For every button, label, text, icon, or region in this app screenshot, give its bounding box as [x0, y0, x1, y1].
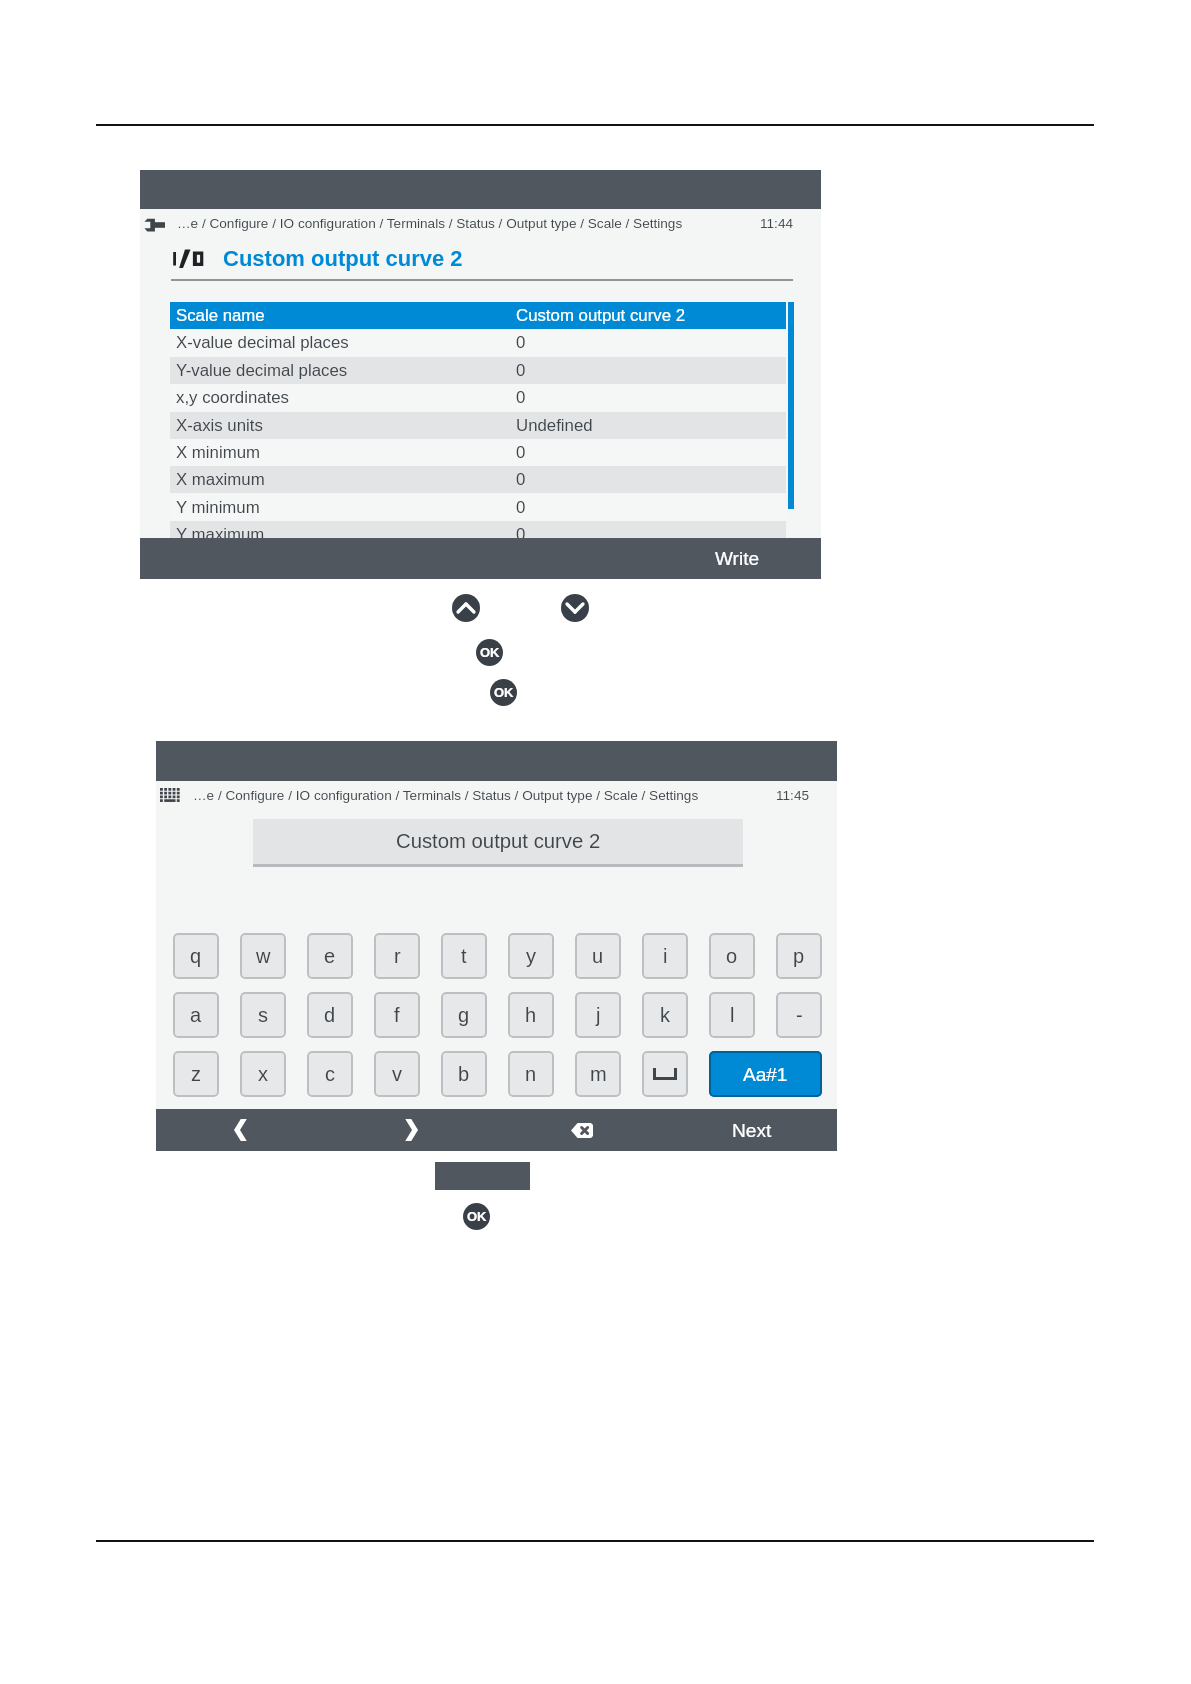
staticText: Custom output curve 2	[516, 306, 685, 325]
button[interactable]: k	[642, 992, 688, 1038]
button[interactable]: Y-value decimal places	[170, 357, 786, 384]
staticText: s	[258, 1004, 268, 1026]
button[interactable]: g	[441, 992, 487, 1038]
button[interactable]: t	[441, 933, 487, 979]
staticText: d	[324, 1004, 336, 1026]
button[interactable]: -	[776, 992, 822, 1038]
staticText: -	[796, 1004, 803, 1026]
button[interactable]: Next	[697, 1109, 807, 1151]
staticText: Next	[732, 1120, 772, 1141]
button[interactable]: f	[374, 992, 420, 1038]
staticText: Write	[715, 548, 759, 569]
staticText: 0	[516, 498, 526, 517]
staticText: OK	[467, 1209, 487, 1224]
staticText: Undefined	[516, 416, 593, 435]
button[interactable]: c	[307, 1051, 353, 1097]
staticText: x,y coordinates	[176, 388, 289, 407]
staticText: t	[461, 945, 467, 967]
button[interactable]: w	[240, 933, 286, 979]
button[interactable]: a	[173, 992, 219, 1038]
staticText: n	[525, 1063, 537, 1085]
staticText: q	[190, 945, 202, 967]
staticText: 0	[516, 525, 526, 538]
button[interactable]: r	[374, 933, 420, 979]
button[interactable]: m	[575, 1051, 621, 1097]
button[interactable]: v	[374, 1051, 420, 1097]
staticText: h	[525, 1004, 537, 1026]
staticText: OK	[480, 645, 500, 660]
button[interactable]: s	[240, 992, 286, 1038]
button[interactable]: Aa#1	[709, 1051, 822, 1097]
button[interactable]: Backspace	[527, 1109, 637, 1151]
staticText: 11:45	[776, 788, 810, 803]
staticText: X minimum	[176, 443, 260, 462]
staticText: w	[256, 945, 271, 967]
button[interactable]: l	[709, 992, 755, 1038]
button[interactable]: X minimum	[170, 439, 786, 466]
staticText: a	[190, 1004, 202, 1026]
staticText: k	[660, 1004, 670, 1026]
button[interactable]: Custom output curve 2	[253, 819, 743, 864]
staticText: c	[325, 1063, 335, 1085]
button[interactable]: n	[508, 1051, 554, 1097]
button[interactable]: Y minimum	[170, 494, 786, 521]
button[interactable]: i	[642, 933, 688, 979]
staticText: Y maximum	[176, 525, 265, 538]
staticText: X-axis units	[176, 416, 263, 435]
button[interactable]: p	[776, 933, 822, 979]
button[interactable]: Write	[715, 538, 821, 579]
staticText: p	[793, 945, 805, 967]
staticText: m	[590, 1063, 607, 1085]
button[interactable]: Move left	[186, 1109, 296, 1151]
staticText: 0	[516, 361, 526, 380]
button[interactable]: Move right	[355, 1109, 465, 1151]
staticText: r	[394, 945, 401, 967]
staticText: Scale name	[176, 306, 265, 325]
button[interactable]: d	[307, 992, 353, 1038]
button[interactable]: z	[173, 1051, 219, 1097]
button[interactable]: OK	[476, 639, 503, 666]
staticText: o	[726, 945, 738, 967]
button[interactable]: X maximum	[170, 466, 786, 493]
button[interactable]: y	[508, 933, 554, 979]
button[interactable]: OK	[490, 679, 517, 706]
staticText: Y-value decimal places	[176, 361, 348, 380]
staticText: Y minimum	[176, 498, 260, 517]
staticText: Custom output curve 2	[223, 246, 463, 271]
staticText: u	[592, 945, 604, 967]
button[interactable]: Y maximum	[170, 521, 786, 538]
button[interactable]: o	[709, 933, 755, 979]
button[interactable]: x	[240, 1051, 286, 1097]
button[interactable]: Scale name	[170, 302, 786, 329]
staticText: g	[458, 1004, 470, 1026]
staticText: 0	[516, 470, 526, 489]
staticText: j	[596, 1004, 601, 1026]
button[interactable]: e	[307, 933, 353, 979]
staticText: 0	[516, 333, 526, 352]
button[interactable]: q	[173, 933, 219, 979]
staticText: b	[458, 1063, 470, 1085]
button[interactable]: h	[508, 992, 554, 1038]
staticText: y	[526, 945, 536, 967]
button[interactable]: b	[441, 1051, 487, 1097]
staticText: v	[392, 1063, 402, 1085]
button[interactable]	[642, 1051, 688, 1097]
staticText: …e / Configure / IO configuration / Term…	[193, 788, 699, 803]
staticText: …e / Configure / IO configuration / Term…	[177, 216, 683, 231]
button[interactable]: Scroll up	[452, 594, 480, 622]
staticText: Aa#1	[743, 1064, 788, 1085]
staticText: e	[324, 945, 336, 967]
button[interactable]: x,y coordinates	[170, 384, 786, 411]
button[interactable]: Scroll down	[561, 594, 589, 622]
button[interactable]: X-value decimal places	[170, 329, 786, 356]
staticText: X-value decimal places	[176, 333, 349, 352]
staticText: OK	[494, 685, 514, 700]
button[interactable]: OK	[463, 1203, 490, 1230]
button[interactable]: X-axis units	[170, 412, 786, 439]
button[interactable]: u	[575, 933, 621, 979]
staticText: l	[730, 1004, 735, 1026]
button[interactable]: j	[575, 992, 621, 1038]
staticText: Custom output curve 2	[396, 830, 601, 853]
staticText: i	[663, 945, 668, 967]
